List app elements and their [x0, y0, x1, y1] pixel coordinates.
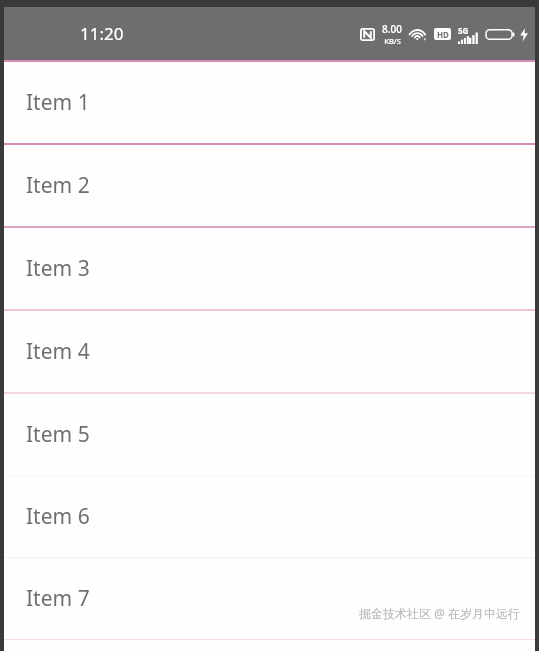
staticText: 8.00	[382, 22, 402, 36]
button[interactable]: Item 7	[4, 558, 535, 639]
button[interactable]: Item 6	[4, 476, 535, 557]
button[interactable]: Item 1	[4, 62, 535, 143]
staticText: KB/S	[384, 36, 401, 46]
staticText: Item 7	[26, 584, 90, 613]
staticText: Item 1	[26, 88, 90, 117]
button[interactable]: Item 2	[4, 145, 535, 226]
staticText: Item 6	[26, 502, 90, 531]
staticText: HD	[437, 29, 449, 40]
staticText: Item 5	[26, 420, 90, 449]
staticText: Item 3	[26, 254, 90, 283]
staticText: 5G	[458, 25, 469, 36]
staticText: Item 4	[26, 337, 90, 366]
button[interactable]: Item 3	[4, 228, 535, 309]
button[interactable]: Item 4	[4, 311, 535, 392]
staticText: 掘金技术社区 @ 在岁月中远行	[359, 605, 521, 621]
staticText: Item 2	[26, 171, 90, 200]
staticText: 11:20	[80, 22, 124, 45]
button[interactable]: Item 5	[4, 394, 535, 475]
